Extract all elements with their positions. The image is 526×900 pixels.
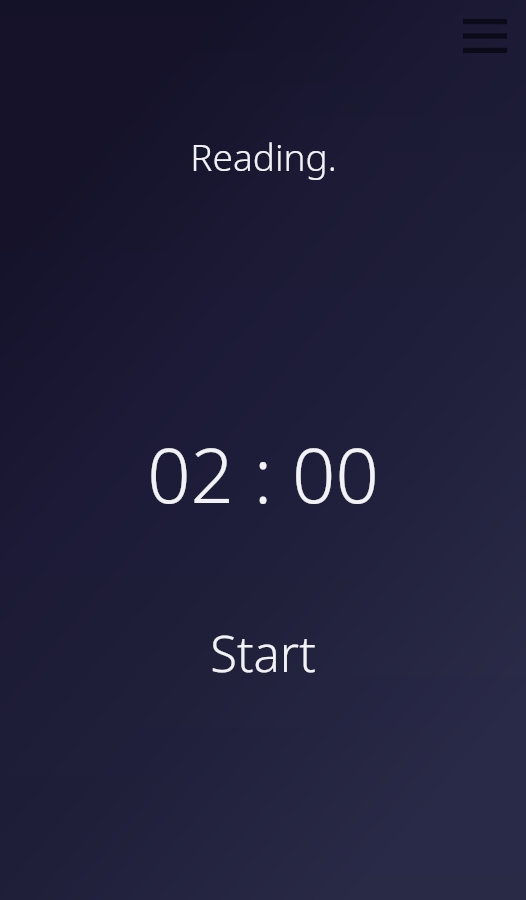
staticText: 02 : 00	[147, 422, 379, 526]
button[interactable]: Menu	[454, 8, 516, 64]
button[interactable]: Start	[184, 612, 342, 695]
staticText: Start	[210, 620, 316, 687]
staticText: Reading.	[190, 131, 337, 181]
